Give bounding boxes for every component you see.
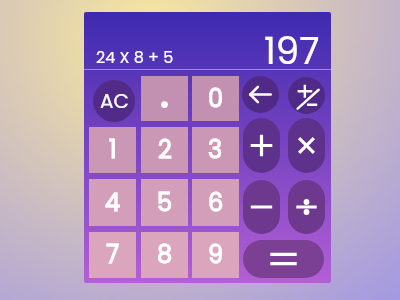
button[interactable]: 5 <box>141 179 188 226</box>
button[interactable]: Multiply <box>288 118 325 173</box>
staticText: 1 <box>109 133 117 167</box>
button[interactable]: 9 <box>192 232 239 278</box>
staticText: 8 <box>157 238 173 272</box>
button[interactable]: 6 <box>192 179 239 226</box>
staticText: AC <box>100 87 129 115</box>
staticText: 24 X 8 + 5 <box>96 46 174 68</box>
staticText: 9 <box>208 238 224 272</box>
button[interactable]: Decimal point <box>141 76 188 121</box>
button[interactable]: 2 <box>141 127 188 173</box>
button[interactable]: 0 <box>192 76 239 121</box>
button[interactable]: 4 <box>89 179 136 226</box>
staticText: 197 <box>264 25 320 77</box>
button[interactable]: Toggle sign <box>288 77 325 114</box>
staticText: 0 <box>208 82 224 116</box>
staticText: 6 <box>208 186 224 220</box>
button[interactable]: 7 <box>89 232 136 278</box>
button[interactable]: 8 <box>141 232 188 278</box>
staticText: 3 <box>208 133 223 167</box>
button[interactable]: AC <box>93 80 135 122</box>
button[interactable]: Subtract <box>243 180 280 234</box>
button[interactable]: 1 <box>89 127 136 173</box>
button[interactable]: Add <box>243 118 280 173</box>
staticText: 2 <box>158 133 172 167</box>
button[interactable]: 3 <box>192 127 239 173</box>
button[interactable]: Divide <box>288 180 325 234</box>
staticText: 4 <box>105 186 121 220</box>
staticText: 5 <box>157 186 173 220</box>
button[interactable]: Backspace <box>242 76 279 113</box>
staticText: 7 <box>106 238 120 272</box>
button[interactable]: Equals <box>243 240 324 278</box>
